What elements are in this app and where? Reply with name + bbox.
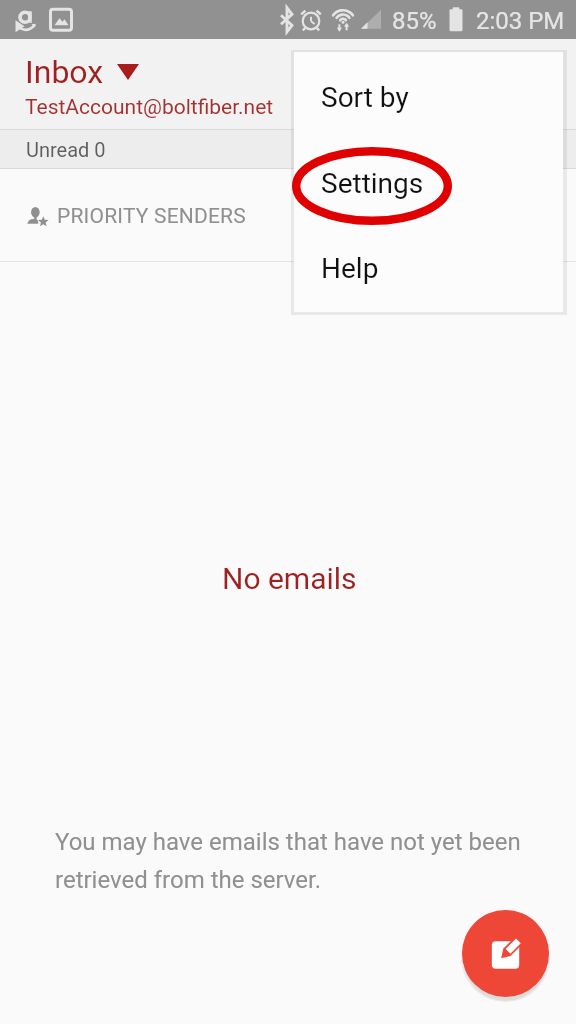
button[interactable]: Unread 0 bbox=[0, 130, 576, 168]
button[interactable]: Sort by bbox=[294, 52, 563, 139]
staticText: Sort by bbox=[321, 81, 409, 114]
staticText: Settings bbox=[321, 167, 424, 200]
staticText: Unread 0 bbox=[26, 138, 106, 161]
button[interactable]: PRIORITY SENDERS bbox=[0, 169, 576, 261]
button[interactable]: Inbox bbox=[18, 51, 148, 91]
button[interactable]: Compose new email bbox=[462, 910, 549, 997]
staticText: TestAccount@boltfiber.net bbox=[25, 95, 274, 120]
button[interactable]: Settings bbox=[294, 139, 563, 225]
staticText: You may have emails that have not yet be… bbox=[55, 828, 521, 894]
staticText: Inbox bbox=[25, 53, 104, 91]
staticText: No emails bbox=[222, 561, 357, 596]
staticText: PRIORITY SENDERS bbox=[57, 204, 246, 229]
staticText: 2:03 PM bbox=[476, 7, 565, 35]
button[interactable]: Help bbox=[294, 225, 563, 312]
staticText: 85% bbox=[392, 7, 437, 35]
staticText: Help bbox=[321, 252, 379, 285]
